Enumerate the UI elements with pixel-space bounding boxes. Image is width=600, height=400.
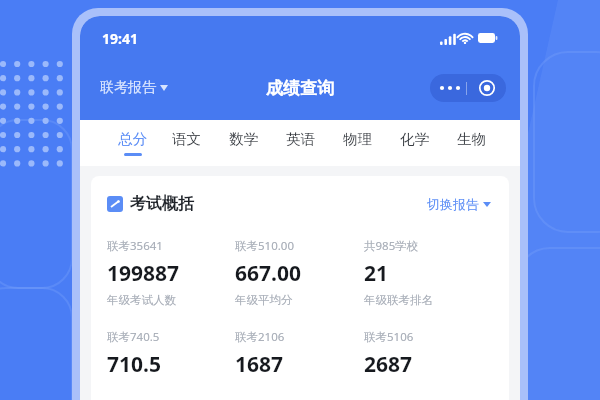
staticText: 化学 (400, 130, 429, 148)
staticText: 2687 (364, 350, 413, 379)
button[interactable]: 语文 (158, 120, 215, 166)
staticText: 切换报告 (427, 196, 479, 212)
staticText: 联考报告 (100, 79, 156, 97)
staticText: 共985学校 (364, 238, 419, 254)
button[interactable]: 化学 (386, 120, 443, 166)
button[interactable]: 生物 (443, 120, 500, 166)
staticText: 英语 (286, 130, 315, 148)
button[interactable]: 总分 (106, 120, 158, 166)
staticText: 710.5 (107, 350, 161, 379)
button[interactable]: 英语 (272, 120, 329, 166)
button[interactable]: 切换报告 (425, 192, 493, 216)
button[interactable]: 联考报告 (98, 75, 170, 101)
staticText: 语文 (172, 130, 201, 148)
staticText: 联考35641 (107, 238, 163, 254)
staticText: 成绩查询 (266, 78, 334, 99)
staticText: 联考5106 (364, 329, 414, 345)
staticText: 年级考试人数 (107, 293, 176, 307)
staticText: 年级平均分 (235, 293, 293, 307)
staticText: 数学 (229, 130, 258, 148)
staticText: 考试概括 (130, 194, 194, 214)
staticText: 1687 (235, 350, 284, 379)
button[interactable]: 物理 (329, 120, 386, 166)
staticText: 21 (364, 259, 389, 288)
staticText: 199887 (107, 259, 180, 288)
staticText: 联考510.00 (235, 238, 294, 254)
staticText: 生物 (457, 130, 486, 148)
staticText: 667.00 (235, 259, 301, 288)
button[interactable]: More options and close (430, 74, 506, 102)
staticText: 年级联考排名 (364, 293, 433, 307)
staticText: 总分 (118, 130, 147, 148)
staticText: 联考2106 (235, 329, 285, 345)
staticText: 物理 (343, 130, 372, 148)
button[interactable]: 数学 (215, 120, 272, 166)
staticText: 19:41 (102, 29, 138, 48)
staticText: 联考740.5 (107, 329, 160, 345)
